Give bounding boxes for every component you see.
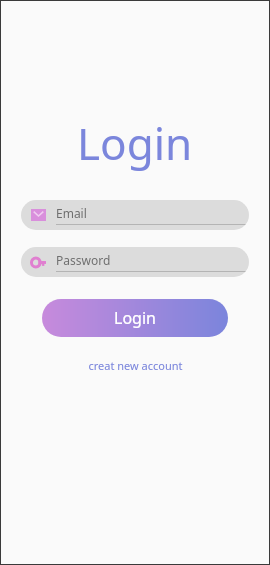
other: Email: [30, 207, 46, 223]
staticText: creat new account: [88, 358, 183, 373]
button[interactable]: creat new account: [80, 355, 191, 376]
staticText: Login: [114, 307, 156, 329]
staticText: Email: [56, 205, 87, 221]
other: Password: [30, 254, 46, 270]
staticText: Login: [77, 113, 193, 173]
staticText: Password: [56, 252, 111, 268]
button[interactable]: Password: [21, 247, 249, 277]
button[interactable]: Email: [21, 200, 249, 230]
button[interactable]: Login: [42, 299, 228, 337]
